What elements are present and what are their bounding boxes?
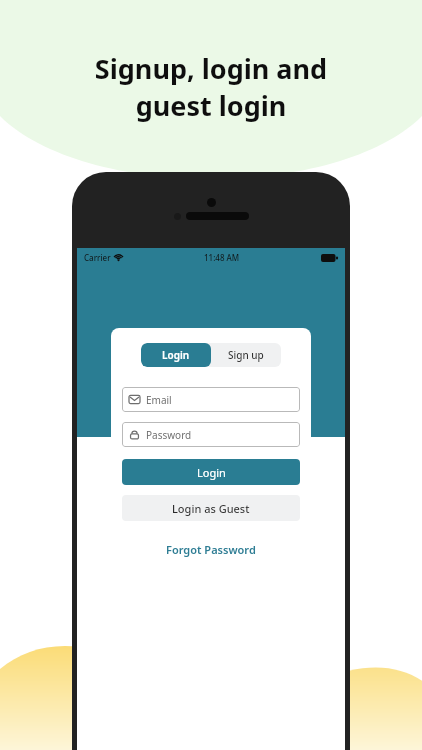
staticText: Signup, login and guest login [0,50,422,124]
staticText: Login [197,465,226,480]
staticText: Forgot Password [166,542,256,557]
staticText: 11:48 AM [204,252,240,263]
button[interactable]: Login as Guest [122,495,300,521]
button[interactable]: Password [122,422,300,447]
button[interactable]: Email [122,387,300,412]
staticText: Email [146,393,172,407]
staticText: Sign up [228,348,264,362]
staticText: Password [146,428,192,442]
button[interactable]: Login [141,343,211,367]
staticText: Login as Guest [172,501,250,516]
button[interactable]: Sign up [211,343,281,367]
staticText: Login [162,348,190,362]
button[interactable]: Login [122,459,300,485]
button[interactable]: Forgot Password [160,536,262,563]
staticText: Carrier [84,252,111,263]
